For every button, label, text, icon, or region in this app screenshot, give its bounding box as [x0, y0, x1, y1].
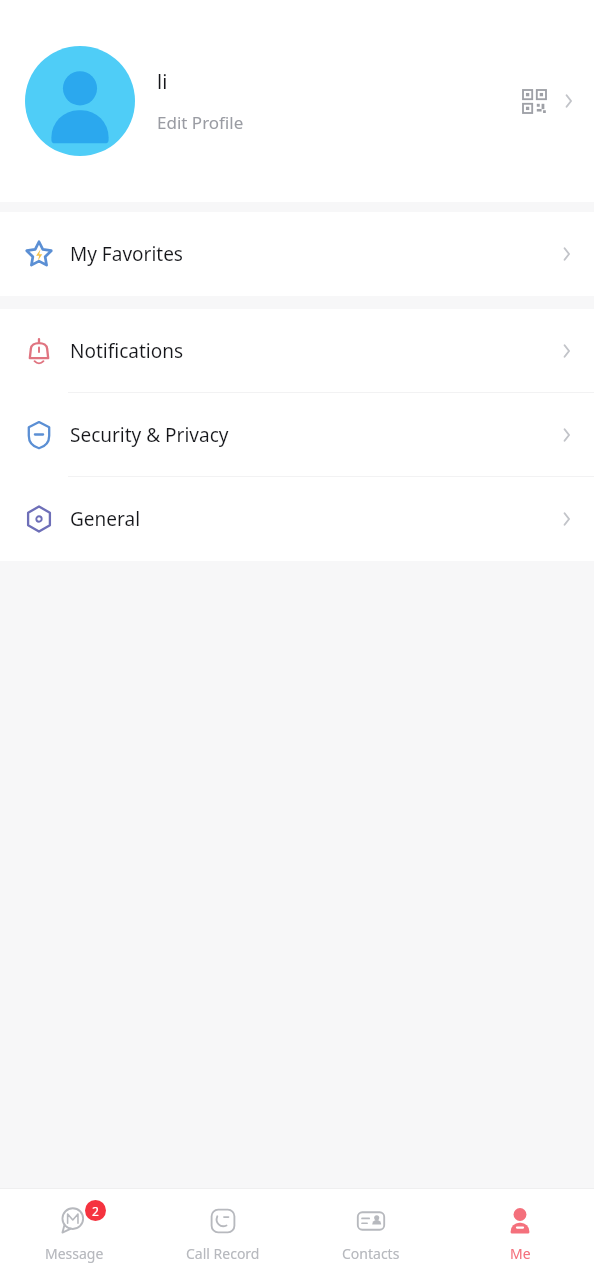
button[interactable]: My Favorites — [0, 212, 594, 296]
button[interactable]: Call Record — [149, 1189, 297, 1280]
staticText: Me — [510, 1244, 531, 1263]
button[interactable]: Notifications — [0, 309, 594, 393]
button[interactable]: Security & Privacy — [0, 393, 594, 477]
button[interactable]: li — [0, 0, 594, 202]
staticText: Message — [45, 1244, 104, 1263]
staticText: li — [157, 68, 168, 95]
staticText: Security & Privacy — [70, 422, 229, 448]
button[interactable]: Me — [446, 1189, 594, 1280]
staticText: 2 — [92, 1203, 99, 1219]
staticText: Call Record — [186, 1244, 260, 1263]
staticText: Notifications — [70, 338, 184, 364]
staticText: General — [70, 506, 141, 532]
staticText: Contacts — [342, 1244, 400, 1263]
button[interactable]: QR code — [512, 79, 556, 123]
button[interactable]: 2 — [0, 1189, 148, 1280]
staticText: My Favorites — [70, 241, 183, 267]
button[interactable]: Contacts — [297, 1189, 445, 1280]
button[interactable]: General — [0, 477, 594, 561]
staticText: Edit Profile — [157, 111, 244, 134]
